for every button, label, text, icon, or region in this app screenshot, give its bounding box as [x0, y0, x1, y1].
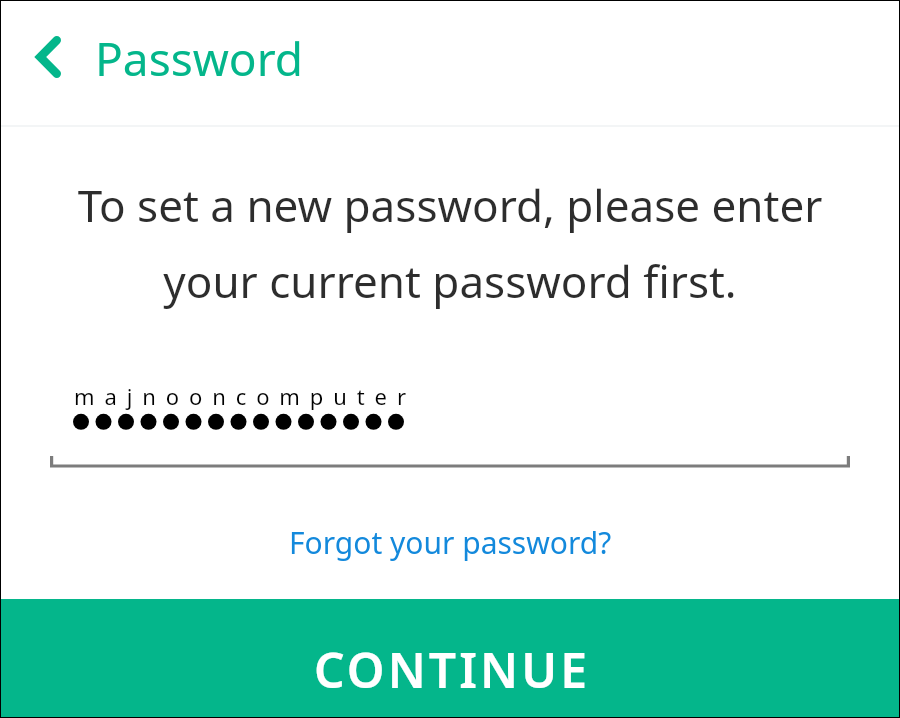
button[interactable]: Current password — [0, 370, 900, 472]
staticText: To set a new password, please enter your… — [66, 175, 834, 311]
staticText: majnooncomputer — [74, 381, 416, 411]
staticText: CONTINUE — [314, 637, 591, 702]
button[interactable]: CONTINUE — [0, 599, 900, 718]
staticText: Password — [95, 27, 304, 90]
button[interactable]: Forgot your password? — [279, 514, 622, 571]
staticText: Forgot your password? — [289, 522, 612, 563]
button[interactable]: Back — [14, 14, 82, 82]
